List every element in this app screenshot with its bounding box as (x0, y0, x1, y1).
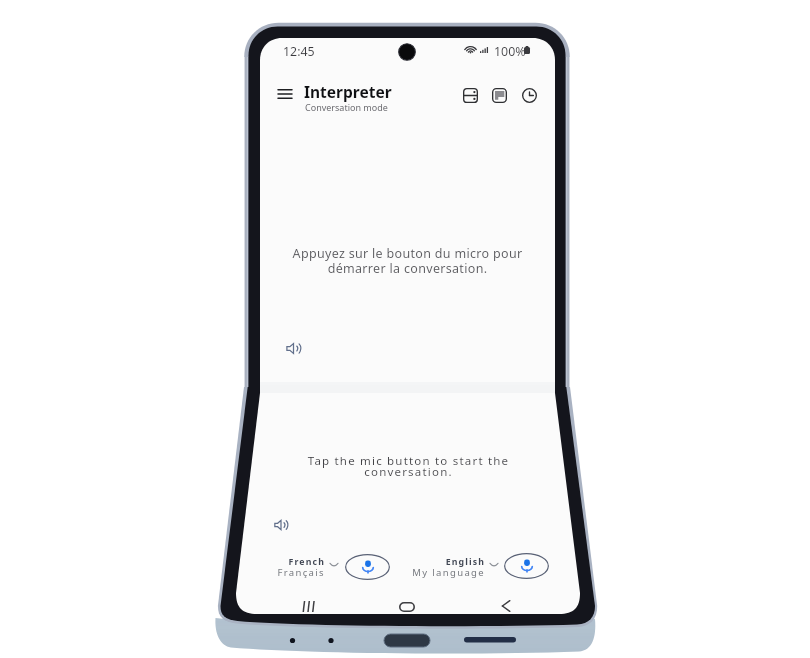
staticText: My language (365, 566, 485, 579)
button[interactable]: French (236, 555, 325, 577)
staticText: Conversation mode (305, 101, 388, 113)
button[interactable]: Change language (327, 558, 341, 572)
button[interactable]: Split screen (460, 85, 480, 105)
staticText: 100% (494, 43, 526, 60)
button[interactable]: Read aloud (282, 337, 305, 360)
button[interactable]: History (519, 85, 539, 105)
staticText: Interpreter (304, 81, 392, 102)
button[interactable]: English (365, 555, 485, 577)
button[interactable]: Read aloud (270, 514, 292, 536)
button[interactable]: Change language (487, 558, 501, 572)
button[interactable]: Back (492, 595, 520, 614)
button[interactable]: Start English microphone (504, 553, 549, 579)
button[interactable]: Recents (294, 595, 322, 614)
staticText: 12:45 (283, 43, 315, 60)
staticText: Appuyez sur le bouton du micro pour déma… (260, 245, 555, 277)
staticText: French (236, 556, 325, 568)
button[interactable]: Home (393, 596, 421, 614)
staticText: Tap the mic button to start the conversa… (261, 453, 556, 480)
button[interactable]: Picture in picture (489, 85, 509, 105)
button[interactable]: Start French microphone (345, 554, 390, 580)
button[interactable]: Menu (272, 81, 297, 106)
staticText: Français (236, 566, 325, 579)
staticText: English (365, 556, 485, 568)
